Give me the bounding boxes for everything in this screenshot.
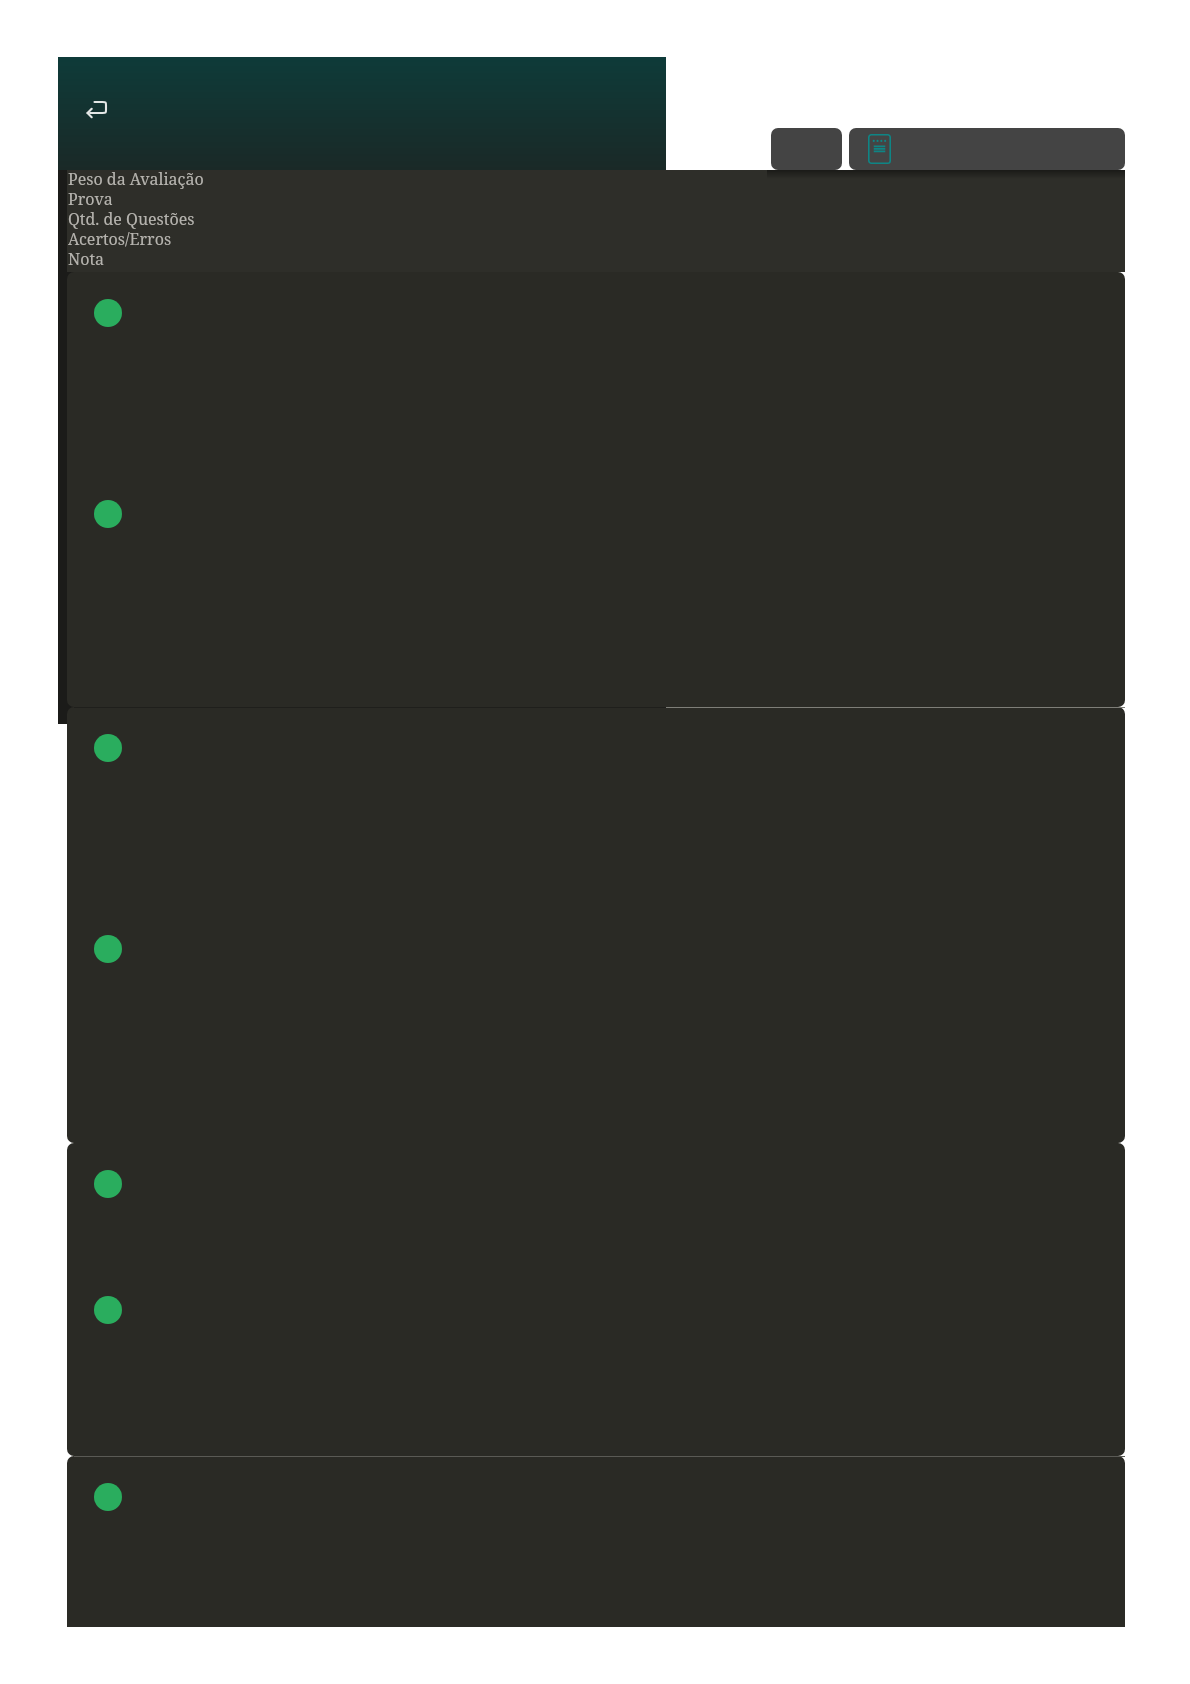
- staticText: Peso da Avaliação: [68, 168, 204, 190]
- button[interactable]: [67, 1300, 1125, 1456]
- button[interactable]: Back: [78, 94, 112, 124]
- button[interactable]: Filter: [771, 128, 842, 170]
- button[interactable]: [67, 1143, 1125, 1300]
- staticText: Nota: [68, 248, 105, 270]
- staticText: Prova: [68, 188, 113, 210]
- button[interactable]: [67, 1456, 1125, 1627]
- button[interactable]: [67, 490, 1125, 707]
- button[interactable]: Notes: [849, 128, 1125, 170]
- staticText: Acertos/Erros: [68, 228, 172, 250]
- button[interactable]: [67, 925, 1125, 1143]
- button[interactable]: [67, 707, 1125, 925]
- staticText: Qtd. de Questões: [68, 208, 195, 230]
- button[interactable]: [67, 272, 1125, 490]
